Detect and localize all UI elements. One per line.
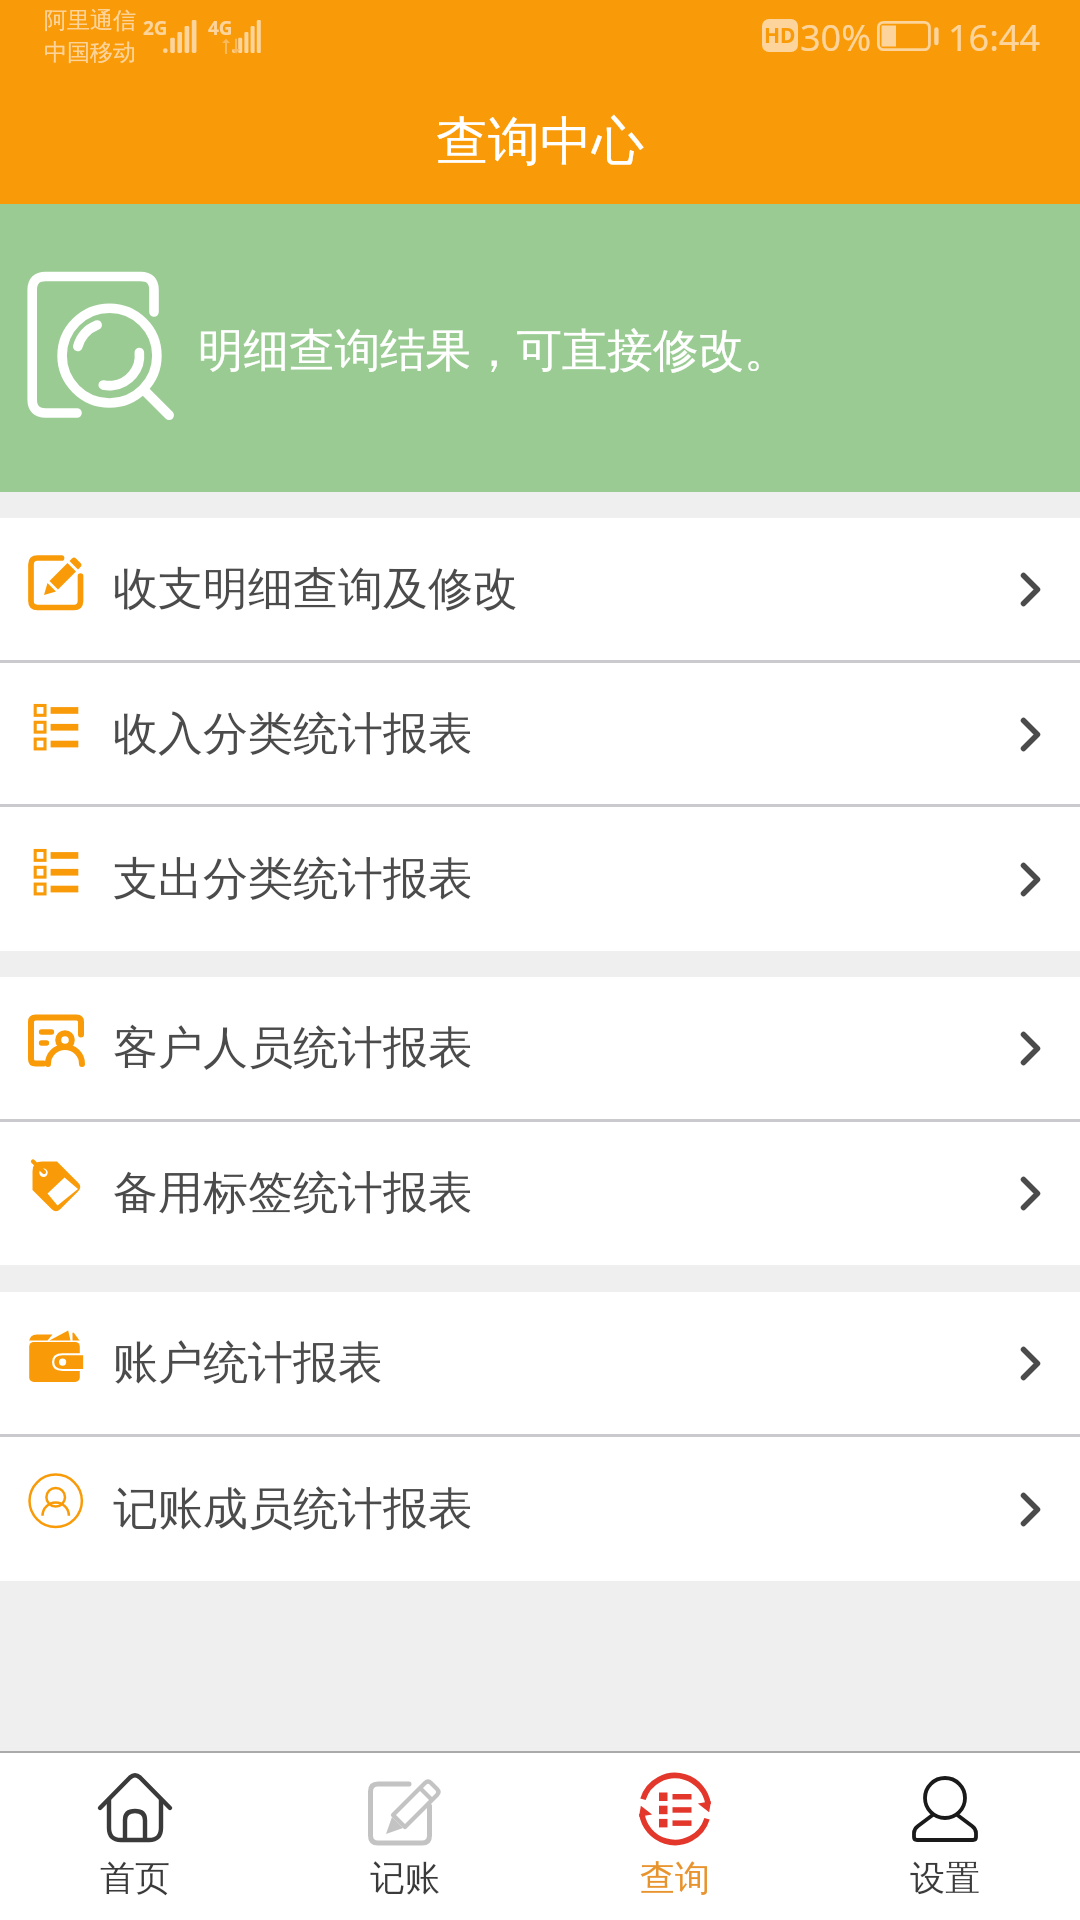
staticText: HD (764, 21, 796, 50)
staticText: 2G (143, 15, 168, 41)
staticText: 明细查询结果，可直接修改。 (198, 322, 790, 379)
staticText: 30% (800, 13, 872, 62)
staticText: 记账成员统计报表 (113, 1481, 473, 1538)
staticText: 中国移动 (44, 38, 136, 67)
staticText: 阿里通信 (44, 6, 136, 35)
staticText: 收支明细查询及修改 (113, 561, 518, 618)
other: 查询明细 (27, 267, 176, 416)
staticText: 备用标签统计报表 (113, 1165, 473, 1222)
staticText: 首页 (100, 1856, 170, 1900)
button[interactable]: 备用标签统计报表 (0, 1122, 1080, 1265)
button[interactable]: 记账成员统计报表 (0, 1437, 1080, 1581)
button[interactable]: 记账 (270, 1753, 540, 1920)
staticText: 4G (208, 15, 233, 41)
staticText: 账户统计报表 (113, 1335, 383, 1392)
staticText: 记账 (370, 1856, 440, 1900)
button[interactable]: 查询 (540, 1753, 810, 1920)
button[interactable]: 客户人员统计报表 (0, 977, 1080, 1120)
staticText: 查询 (640, 1856, 710, 1900)
button[interactable]: 收入分类统计报表 (0, 663, 1080, 805)
staticText: 收入分类统计报表 (113, 706, 473, 763)
staticText: 客户人员统计报表 (113, 1020, 473, 1077)
button[interactable]: 账户统计报表 (0, 1292, 1080, 1435)
button[interactable]: 首页 (0, 1753, 270, 1920)
button[interactable]: 收支明细查询及修改 (0, 518, 1080, 661)
staticText: 设置 (910, 1856, 980, 1900)
button[interactable]: 设置 (810, 1753, 1080, 1920)
staticText: 16:44 (948, 13, 1041, 62)
button[interactable]: 支出分类统计报表 (0, 807, 1080, 951)
staticText: 支出分类统计报表 (113, 851, 473, 908)
staticText: 查询中心 (436, 109, 644, 175)
